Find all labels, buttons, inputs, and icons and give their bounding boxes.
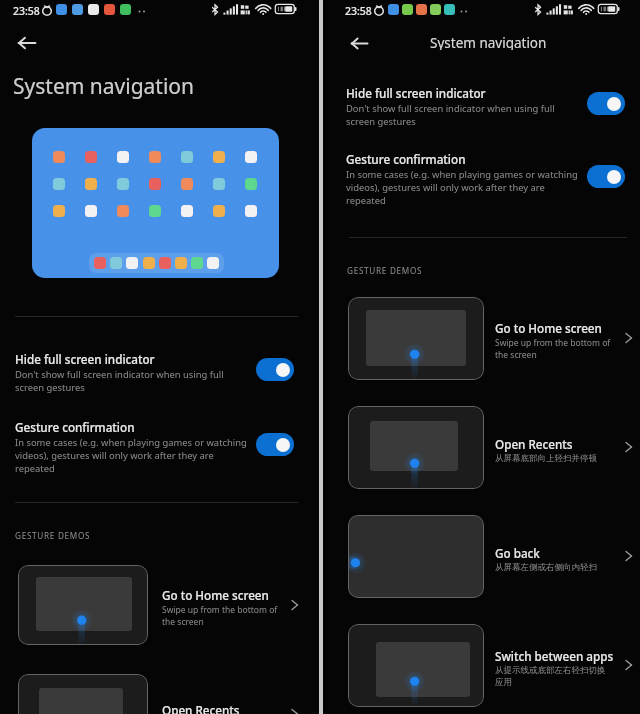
staticText: GESTURE DEMOS	[347, 265, 423, 276]
staticText: 23:58	[13, 4, 40, 18]
staticText: GESTURE DEMOS	[15, 530, 91, 541]
staticText: Swipe up from the bottom of the screen	[495, 337, 611, 361]
staticText: Go back	[495, 545, 540, 561]
staticText: Swipe up from the bottom of the screen	[162, 604, 278, 628]
staticText: 从提示线或底部左右轻扫切换 应用	[495, 665, 606, 687]
staticText: Gesture confirmation	[346, 151, 466, 167]
staticText: In some cases (e.g. when playing games o…	[346, 168, 578, 207]
button[interactable]: Open Recents	[0, 674, 319, 714]
staticText: Go to Home screen	[162, 587, 269, 603]
staticText: System navigation	[430, 34, 547, 50]
button[interactable]: Toggle on	[587, 92, 625, 115]
staticText: Open Recents	[162, 702, 240, 714]
staticText: In some cases (e.g. when playing games o…	[15, 436, 247, 475]
button[interactable]: Go back	[323, 515, 640, 598]
staticText: 23:58	[345, 4, 372, 18]
button[interactable]: Toggle on	[587, 165, 625, 188]
button[interactable]: Toggle on	[256, 358, 294, 381]
staticText: System navigation	[13, 72, 195, 101]
button[interactable]: Back	[10, 26, 44, 60]
staticText: Hide full screen indicator	[15, 351, 155, 367]
button[interactable]: Toggle on	[256, 433, 294, 456]
staticText: Go to Home screen	[495, 320, 602, 336]
staticText: 从屏幕底部向上轻扫并停顿	[495, 453, 597, 464]
staticText: Hide full screen indicator	[346, 85, 486, 101]
staticText: Open Recents	[495, 436, 573, 452]
button[interactable]: Back	[343, 27, 375, 59]
button[interactable]: Open Recents	[323, 406, 640, 489]
staticText: Gesture confirmation	[15, 419, 135, 435]
staticText: 从屏幕左侧或右侧向内轻扫	[495, 562, 597, 573]
staticText: Don't show full screen indicator when us…	[15, 368, 224, 394]
button[interactable]: Go to Home screen	[323, 297, 640, 380]
staticText: Switch between apps	[495, 648, 614, 664]
button[interactable]: Switch between apps	[323, 624, 640, 707]
staticText: Don't show full screen indicator when us…	[346, 102, 555, 128]
button[interactable]: Go to Home screen	[0, 565, 319, 645]
